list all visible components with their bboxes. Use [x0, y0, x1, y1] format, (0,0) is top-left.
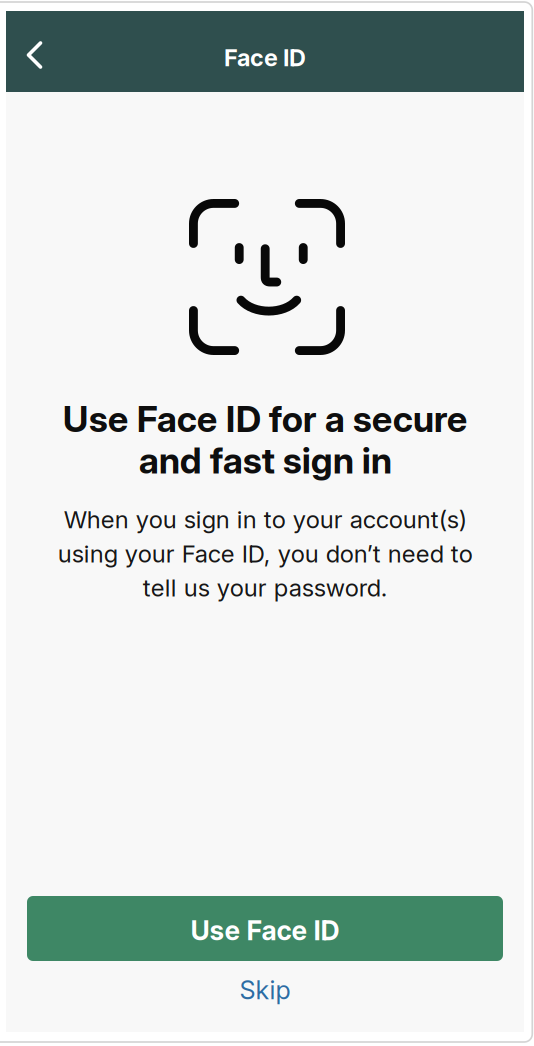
button[interactable]: Skip: [6, 969, 524, 1009]
staticText: Use Face ID: [190, 914, 339, 947]
staticText: When you sign in to your account(s) usin…: [57, 505, 472, 602]
staticText: Use Face ID for a secure and fast sign i…: [62, 397, 467, 482]
button[interactable]: Back: [6, 9, 58, 93]
staticText: Skip: [239, 975, 290, 1005]
staticText: Face ID: [224, 43, 306, 72]
button[interactable]: Use Face ID: [27, 896, 503, 961]
